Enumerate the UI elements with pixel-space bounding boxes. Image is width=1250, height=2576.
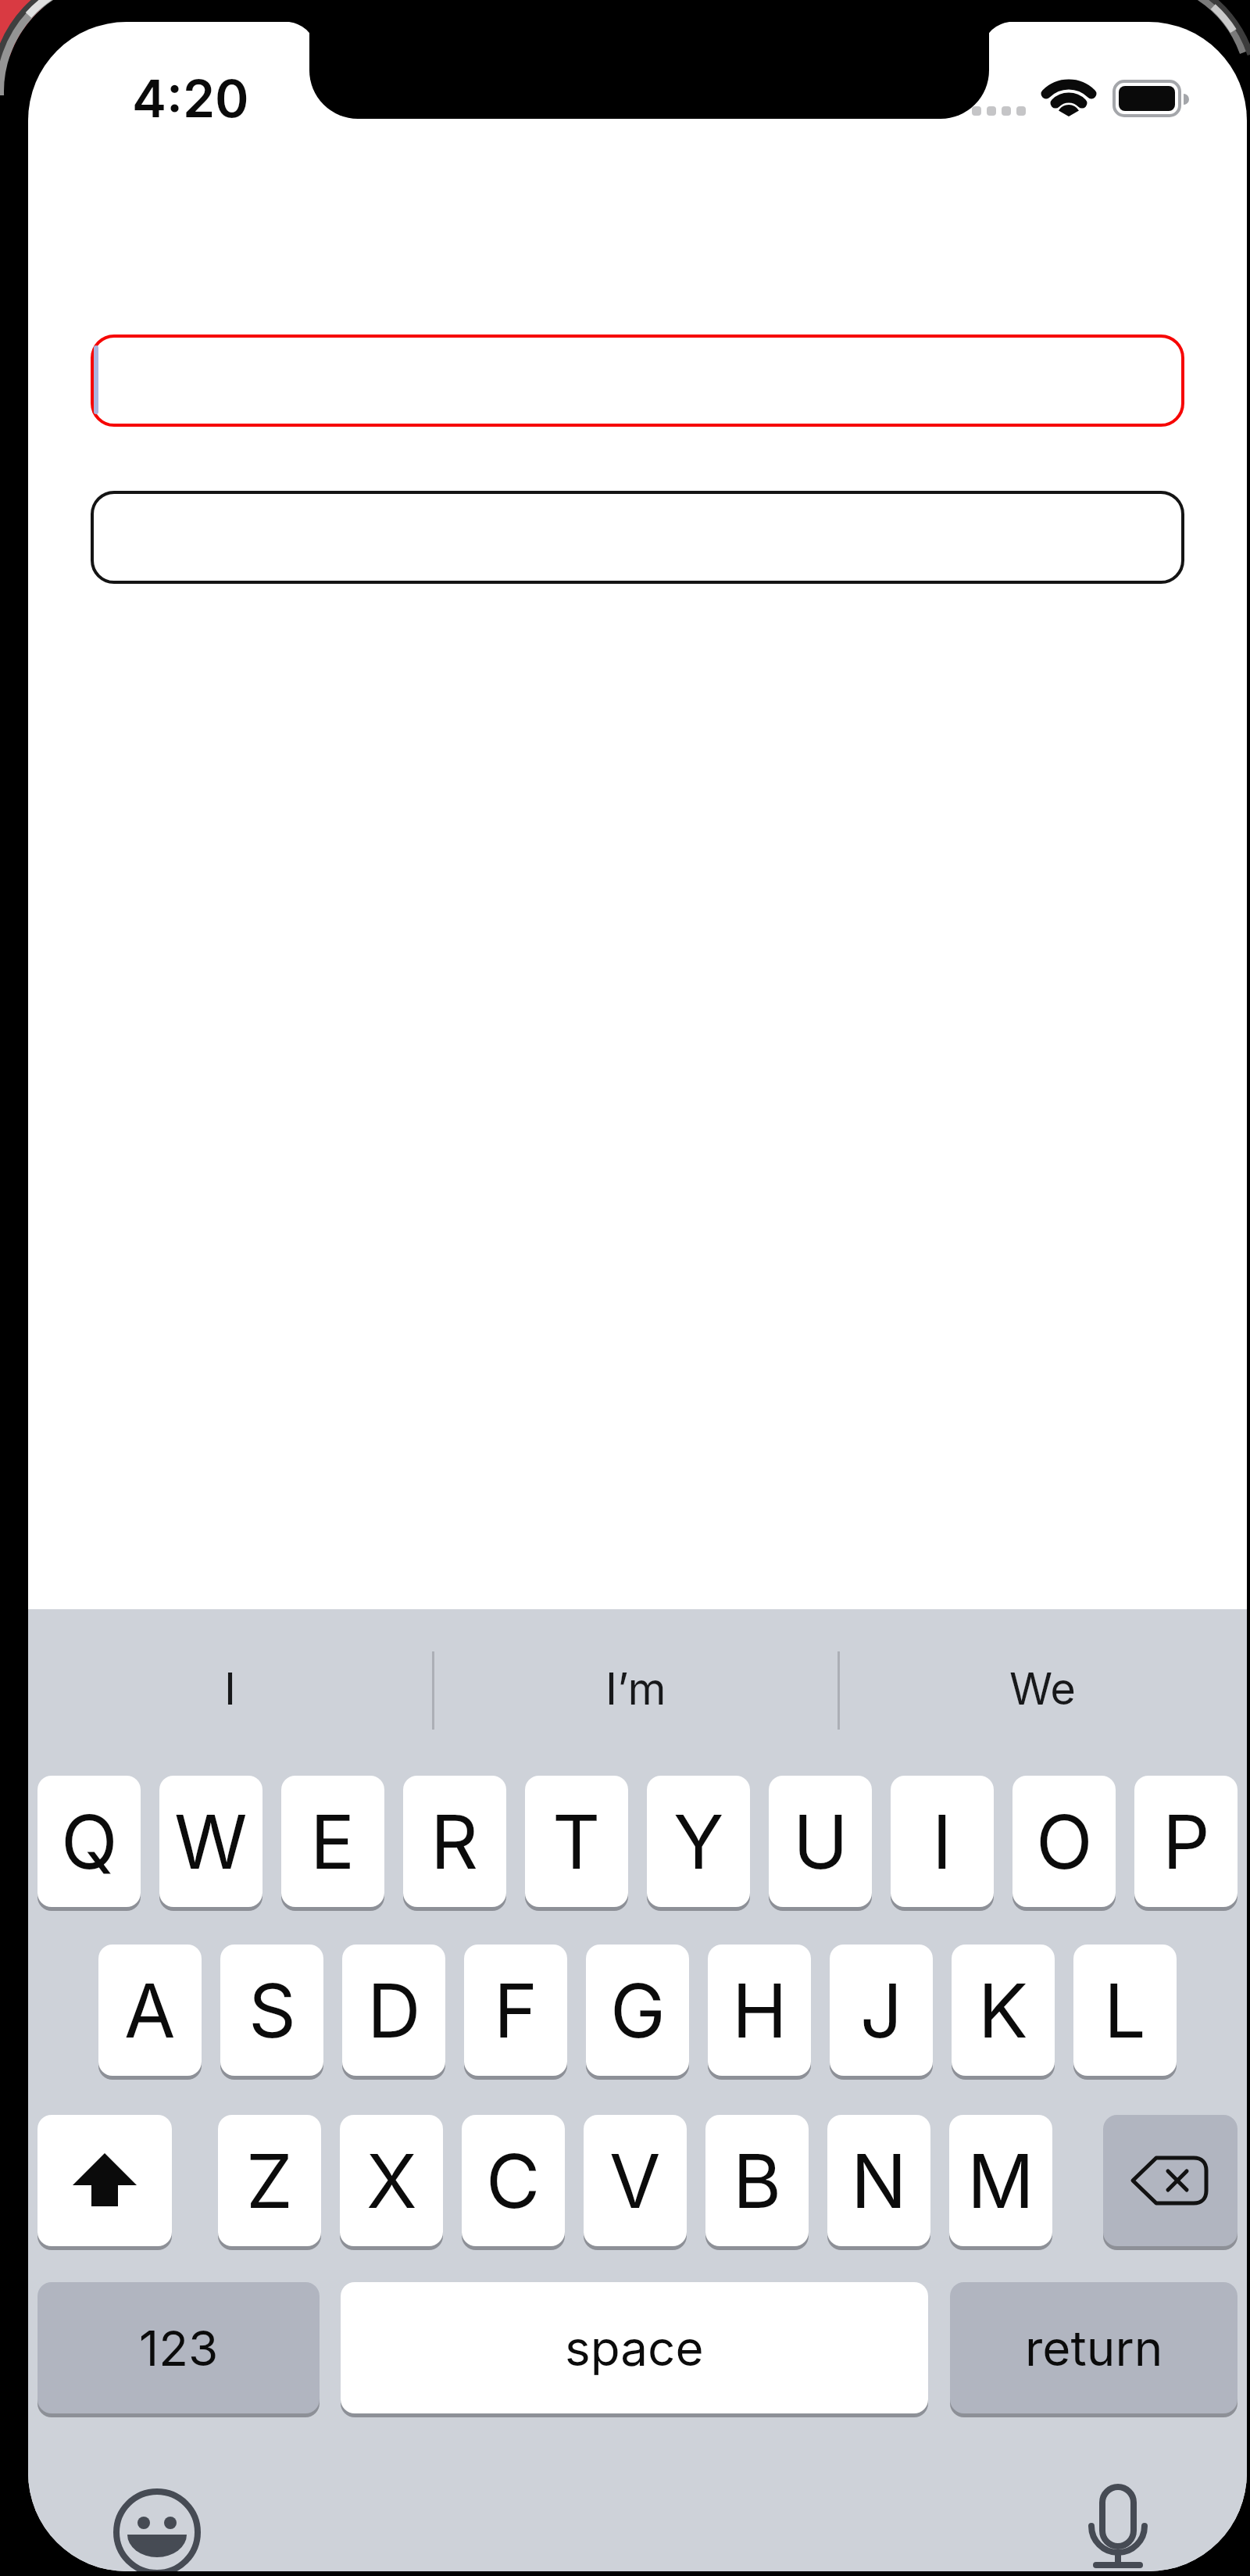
button[interactable]: M (949, 2115, 1052, 2246)
button[interactable]: N (827, 2115, 930, 2246)
staticText: L (1104, 1966, 1146, 2055)
button[interactable]: O (1012, 1776, 1116, 1907)
button[interactable]: U (769, 1776, 872, 1907)
button[interactable]: Y (647, 1776, 750, 1907)
staticText: U (793, 1797, 848, 1887)
staticText: P (1162, 1797, 1210, 1887)
button[interactable]: 123 (37, 2282, 320, 2413)
staticText: I’m (605, 1662, 666, 1716)
staticText: T (552, 1797, 601, 1887)
button[interactable]: D (342, 1945, 445, 2076)
button[interactable]: We (838, 1655, 1247, 1723)
button[interactable]: return (950, 2282, 1237, 2413)
staticText: N (851, 2136, 907, 2226)
staticText: space (565, 2319, 704, 2377)
button[interactable] (110, 2485, 204, 2571)
staticText: W (174, 1797, 248, 1887)
staticText: We (1009, 1662, 1076, 1716)
button[interactable]: C (462, 2115, 565, 2246)
staticText: V (609, 2136, 661, 2226)
button[interactable]: V (584, 2115, 687, 2246)
button[interactable]: J (830, 1945, 933, 2076)
button[interactable]: Q (37, 1776, 141, 1907)
button[interactable]: E (281, 1776, 384, 1907)
staticText: I (932, 1797, 952, 1887)
staticText: M (967, 2136, 1034, 2226)
staticText: return (1025, 2319, 1163, 2377)
button[interactable]: G (586, 1945, 689, 2076)
button[interactable]: Z (218, 2115, 321, 2246)
staticText: 123 (139, 2319, 219, 2377)
staticText: H (732, 1966, 787, 2055)
button[interactable]: P (1134, 1776, 1237, 1907)
button[interactable]: I (891, 1776, 994, 1907)
button[interactable]: X (340, 2115, 443, 2246)
button[interactable]: T (525, 1776, 628, 1907)
staticText: O (1036, 1797, 1093, 1887)
button[interactable]: W (159, 1776, 262, 1907)
button[interactable]: I’m (433, 1655, 838, 1723)
button[interactable]: A (98, 1945, 202, 2076)
button[interactable] (1103, 2115, 1237, 2246)
button[interactable] (91, 335, 1184, 427)
staticText: A (124, 1966, 176, 2055)
staticText: F (494, 1966, 538, 2055)
button[interactable]: B (705, 2115, 809, 2246)
staticText: R (430, 1797, 479, 1887)
staticText: I (224, 1662, 237, 1716)
staticText: 4:20 (132, 67, 249, 130)
staticText: J (860, 1966, 903, 2055)
staticText: D (367, 1966, 421, 2055)
staticText: B (733, 2136, 782, 2226)
staticText: Y (673, 1797, 724, 1887)
button[interactable] (37, 2115, 172, 2246)
button[interactable] (91, 491, 1184, 584)
staticText: Q (61, 1797, 118, 1887)
button[interactable]: S (220, 1945, 323, 2076)
staticText: C (486, 2136, 541, 2226)
staticText: X (366, 2136, 417, 2226)
button[interactable]: K (952, 1945, 1055, 2076)
button[interactable] (1071, 2476, 1165, 2571)
button[interactable]: I (28, 1655, 433, 1723)
button[interactable]: R (403, 1776, 506, 1907)
staticText: K (978, 1966, 1028, 2055)
staticText: Z (246, 2136, 293, 2226)
button[interactable]: H (708, 1945, 811, 2076)
button[interactable]: space (341, 2282, 928, 2413)
staticText: E (310, 1797, 355, 1887)
button[interactable]: L (1073, 1945, 1177, 2076)
button[interactable]: F (464, 1945, 567, 2076)
staticText: G (610, 1966, 666, 2055)
staticText: S (248, 1966, 296, 2055)
